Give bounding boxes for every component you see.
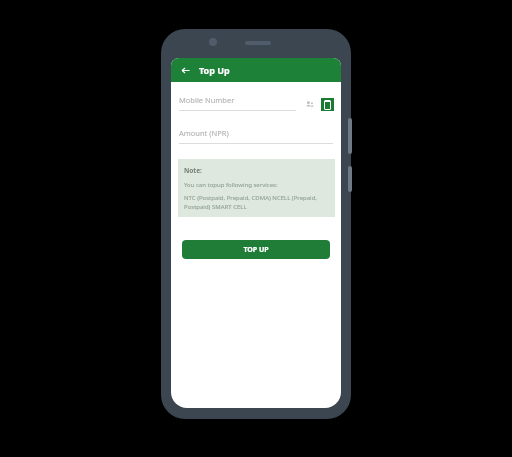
staticText: Mobile Number xyxy=(179,95,235,105)
staticText: You can topup following services: xyxy=(184,181,278,189)
staticText: Note: xyxy=(184,166,202,175)
staticText: Amount (NPR) xyxy=(179,128,229,138)
button[interactable]: TOP UP xyxy=(182,240,330,259)
button[interactable]: Back xyxy=(178,63,192,77)
button[interactable]: Select operator xyxy=(321,98,334,111)
button[interactable]: Pick contact xyxy=(303,98,316,111)
staticText: TOP UP xyxy=(243,245,269,255)
staticText: NTC (Postpaid, Prepaid, CDMA) NCELL (Pre… xyxy=(184,194,329,210)
staticText: Top Up xyxy=(199,64,230,76)
